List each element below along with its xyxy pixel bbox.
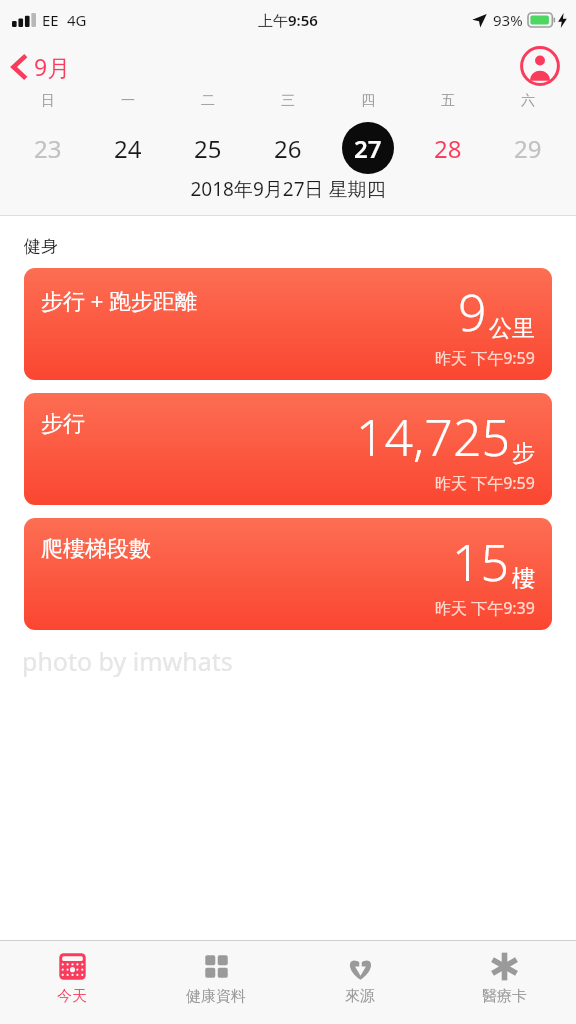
staticText: 4G — [67, 10, 87, 30]
button[interactable]: Profile — [520, 46, 560, 86]
staticText: 三 — [281, 92, 295, 110]
staticText: 步 — [512, 439, 535, 468]
button[interactable]: 27 — [328, 122, 408, 174]
staticText: 爬樓梯段數 — [41, 535, 151, 563]
staticText: 上午9:56 — [258, 10, 318, 30]
staticText: 公里 — [489, 314, 535, 343]
staticText: 今天 — [57, 987, 87, 1006]
staticText: 27 — [354, 132, 382, 165]
staticText: 五 — [441, 92, 455, 110]
button[interactable]: 今天 — [0, 941, 144, 1006]
button[interactable]: 28 — [408, 122, 488, 174]
staticText: 93% — [493, 10, 523, 30]
staticText: 四 — [361, 92, 375, 110]
staticText: 步行 — [41, 410, 85, 438]
staticText: 日 — [41, 92, 55, 110]
button[interactable]: 來源 — [288, 941, 432, 1006]
staticText: 醫療卡 — [482, 987, 527, 1006]
staticText: 29 — [514, 132, 542, 165]
staticText: 25 — [194, 132, 222, 165]
staticText: 9月 — [34, 51, 71, 82]
staticText: 2018年9月27日 星期四 — [0, 176, 576, 202]
staticText: 步行 + 跑步距離 — [41, 285, 198, 315]
staticText: 26 — [274, 132, 302, 165]
staticText: 23 — [34, 132, 62, 165]
button[interactable]: 26 — [248, 122, 328, 174]
staticText: 昨天 下午9:59 — [435, 472, 535, 494]
button[interactable]: 爬樓梯段數 — [24, 518, 552, 630]
staticText: 9 — [458, 278, 487, 346]
staticText: 健身 — [24, 236, 58, 257]
button[interactable]: 23 — [8, 122, 88, 174]
staticText: photo by imwhats — [22, 644, 233, 678]
button[interactable]: 9月 — [0, 45, 85, 88]
button[interactable]: 29 — [488, 122, 568, 174]
button[interactable]: 步行 + 跑步距離 — [24, 268, 552, 380]
button[interactable]: 健康資料 — [144, 941, 288, 1006]
staticText: 15 — [452, 528, 510, 596]
staticText: 一 — [121, 92, 135, 110]
staticText: 14,725 — [356, 403, 510, 471]
staticText: 六 — [521, 92, 535, 110]
staticText: 昨天 下午9:39 — [435, 597, 535, 619]
button[interactable]: 步行 — [24, 393, 552, 505]
staticText: 樓 — [512, 564, 535, 593]
staticText: 健康資料 — [186, 987, 246, 1006]
staticText: 28 — [434, 132, 462, 165]
button[interactable]: 25 — [168, 122, 248, 174]
staticText: EE — [42, 10, 59, 30]
staticText: 二 — [201, 92, 215, 110]
button[interactable]: 醫療卡 — [432, 941, 576, 1006]
staticText: 24 — [114, 132, 142, 165]
staticText: 來源 — [345, 987, 375, 1006]
button[interactable]: 24 — [88, 122, 168, 174]
staticText: 昨天 下午9:59 — [435, 347, 535, 369]
